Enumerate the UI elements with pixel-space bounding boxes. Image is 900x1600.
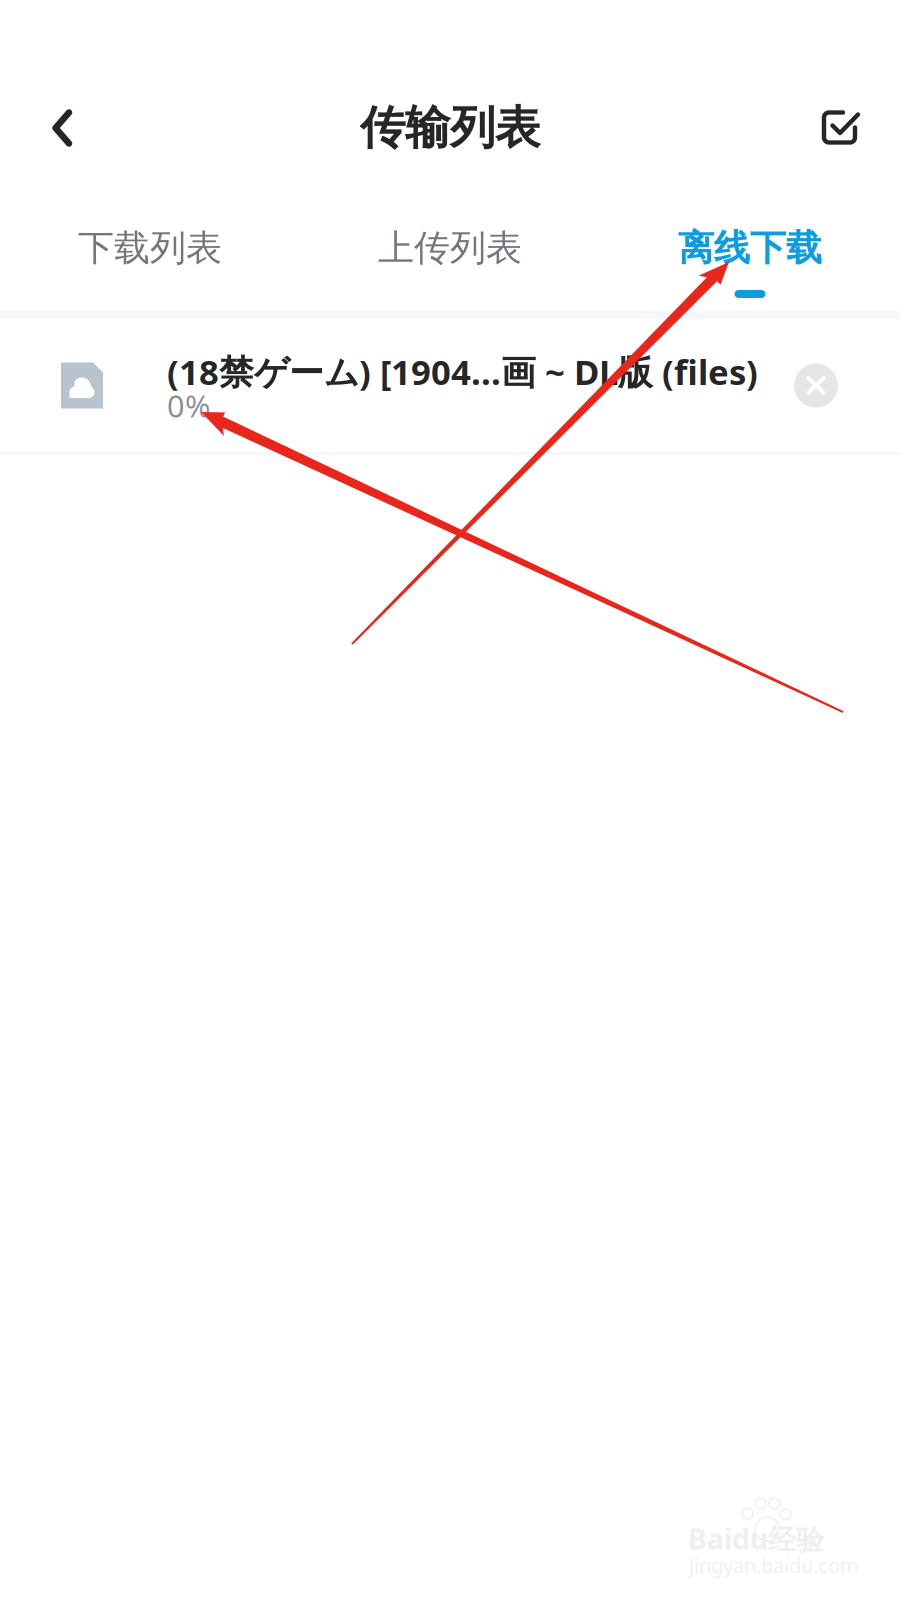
staticText: Baidu经验 [688, 1520, 824, 1557]
button[interactable]: 上传列表 [300, 184, 600, 311]
staticText: 离线下载 [678, 226, 822, 270]
staticText: 0% [167, 385, 210, 426]
staticText: 传输列表 [360, 100, 540, 156]
staticText: 下载列表 [78, 226, 222, 270]
button[interactable]: (18禁ゲーム) [1904...画 ~ DL版 (files) [0, 319, 900, 452]
button[interactable]: 下载列表 [0, 184, 300, 311]
button[interactable]: 离线下载 [600, 184, 900, 311]
button[interactable]: Select all [780, 72, 900, 184]
button[interactable]: Back [0, 72, 124, 184]
staticText: (18禁ゲーム) [1904...画 ~ DL版 (files) [167, 348, 758, 394]
staticText: jingyan.baidu.com [689, 1552, 859, 1579]
staticText: 上传列表 [378, 226, 522, 270]
